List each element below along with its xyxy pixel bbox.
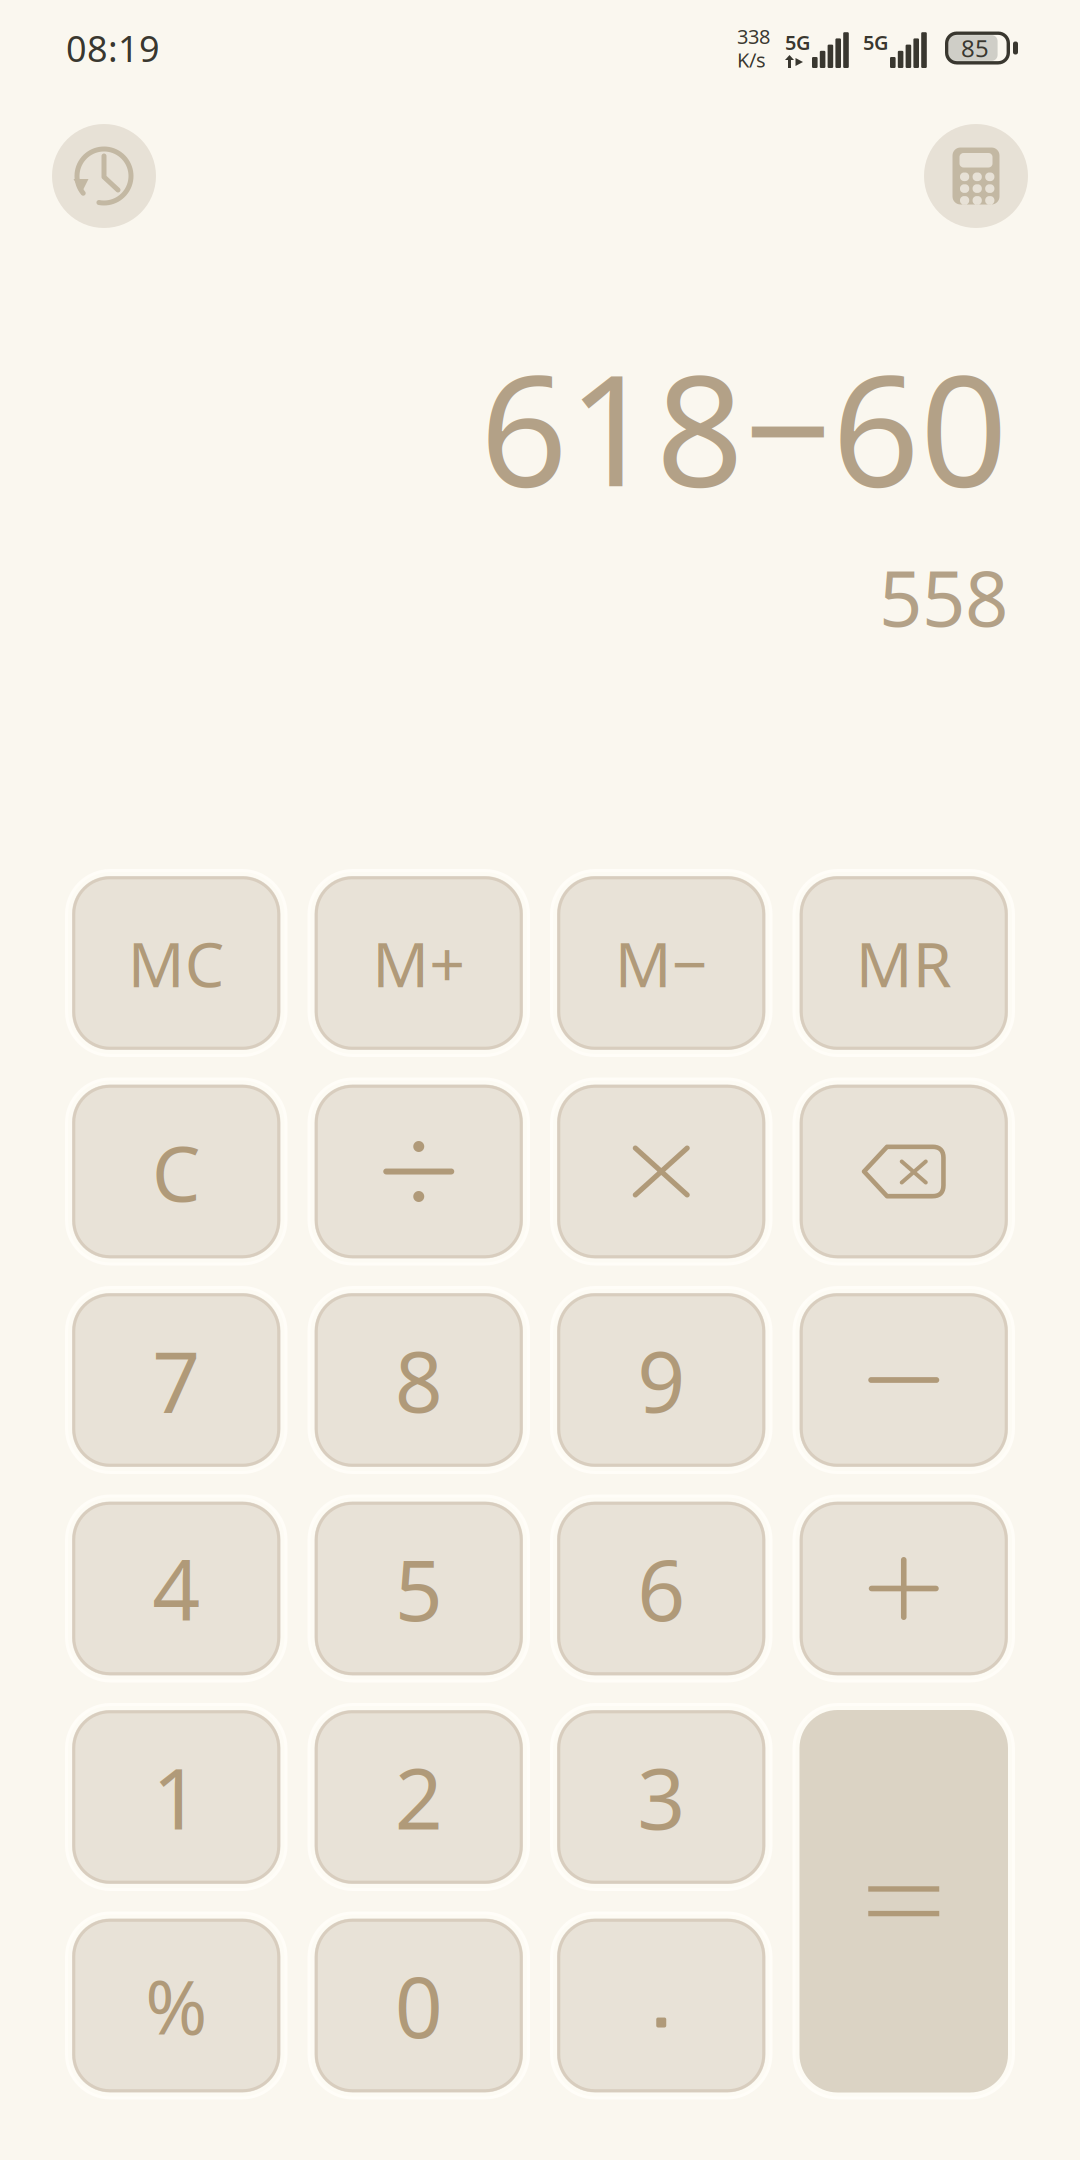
- staticText: M−: [615, 921, 708, 1005]
- button[interactable]: Decimal point: [557, 1918, 765, 2092]
- button[interactable]: 0: [314, 1918, 523, 2092]
- staticText: K/s: [737, 46, 766, 73]
- staticText: 9: [637, 1324, 685, 1436]
- button[interactable]: 9: [557, 1293, 765, 1467]
- staticText: 0: [395, 1950, 443, 2061]
- staticText: 558: [879, 547, 1008, 647]
- button[interactable]: %: [72, 1918, 280, 2092]
- button[interactable]: Scientific calculator: [924, 124, 1028, 228]
- button[interactable]: Plus: [799, 1501, 1008, 1675]
- staticText: 6: [637, 1533, 685, 1644]
- button[interactable]: 5: [314, 1501, 523, 1675]
- staticText: 8: [395, 1324, 443, 1436]
- staticText: 2: [395, 1741, 443, 1853]
- staticText: 85: [961, 32, 989, 64]
- staticText: 08:19: [66, 24, 160, 72]
- button[interactable]: 4: [72, 1501, 280, 1675]
- staticText: 338: [737, 23, 770, 49]
- staticText: MC: [128, 921, 225, 1005]
- button[interactable]: 6: [557, 1501, 765, 1675]
- staticText: 618−60: [480, 325, 1008, 529]
- button[interactable]: 3: [557, 1710, 765, 1884]
- button[interactable]: MC: [72, 876, 280, 1050]
- staticText: 5G: [863, 29, 889, 56]
- staticText: 5: [395, 1533, 443, 1644]
- button[interactable]: Divide: [314, 1084, 523, 1258]
- staticText: MR: [856, 921, 952, 1005]
- button[interactable]: C: [72, 1084, 280, 1258]
- button[interactable]: Equals: [799, 1710, 1008, 2092]
- staticText: 5G: [785, 29, 811, 56]
- button[interactable]: M+: [314, 876, 523, 1050]
- button[interactable]: Multiply: [557, 1084, 765, 1258]
- button[interactable]: M−: [557, 876, 765, 1050]
- button[interactable]: 8: [314, 1293, 523, 1467]
- staticText: 1: [152, 1741, 200, 1853]
- staticText: 4: [152, 1533, 200, 1644]
- staticText: 7: [152, 1324, 200, 1436]
- button[interactable]: MR: [799, 876, 1008, 1050]
- staticText: %: [145, 1956, 207, 2055]
- staticText: M+: [372, 921, 465, 1005]
- button[interactable]: 7: [72, 1293, 280, 1467]
- button[interactable]: History: [52, 124, 156, 228]
- staticText: 3: [637, 1741, 685, 1853]
- button[interactable]: Delete: [799, 1084, 1008, 1258]
- staticText: C: [152, 1120, 201, 1223]
- button[interactable]: 2: [314, 1710, 523, 1884]
- button[interactable]: Minus: [799, 1293, 1008, 1467]
- button[interactable]: 1: [72, 1710, 280, 1884]
